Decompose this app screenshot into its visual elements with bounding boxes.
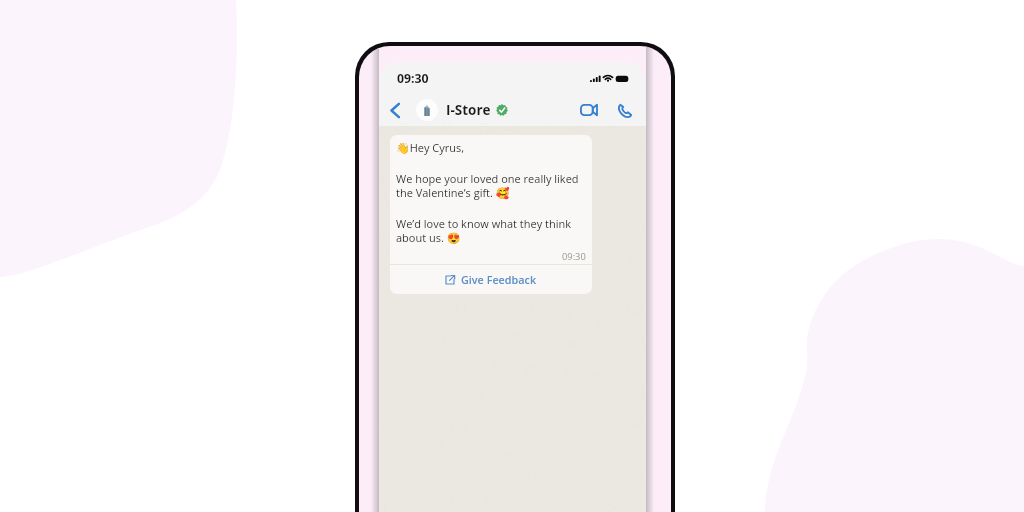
staticText: I-Store — [446, 101, 491, 119]
button[interactable]: I-Store — [416, 99, 508, 121]
staticText: 👋Hey Cyrus, — [396, 140, 465, 155]
button[interactable]: Video call — [576, 97, 602, 123]
staticText: 09:30 — [397, 70, 429, 87]
staticText: Give Feedback — [461, 272, 537, 287]
staticText: 09:30 — [562, 250, 586, 263]
button[interactable]: Back — [382, 97, 408, 123]
staticText: We’d love to know what they think about … — [396, 216, 586, 245]
button[interactable]: Voice call — [611, 97, 637, 123]
staticText: We hope your loved one really liked the … — [396, 171, 586, 200]
button[interactable]: Give Feedback — [390, 265, 592, 294]
